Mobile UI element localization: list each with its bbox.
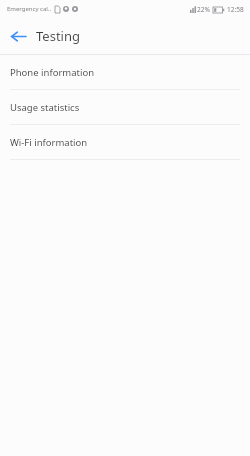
button[interactable]: Phone information (0, 55, 250, 89)
staticText: 22% (197, 5, 210, 14)
staticText: Wi-Fi information (10, 136, 88, 149)
staticText: Emergency cal.. (7, 5, 52, 13)
staticText: 12:58 (227, 5, 244, 14)
staticText: Usage statistics (10, 101, 80, 114)
staticText: Phone information (10, 66, 95, 79)
button[interactable]: Back (0, 18, 36, 54)
button[interactable]: Wi-Fi information (0, 125, 250, 159)
staticText: Testing (36, 27, 80, 45)
button[interactable]: Usage statistics (0, 90, 250, 124)
